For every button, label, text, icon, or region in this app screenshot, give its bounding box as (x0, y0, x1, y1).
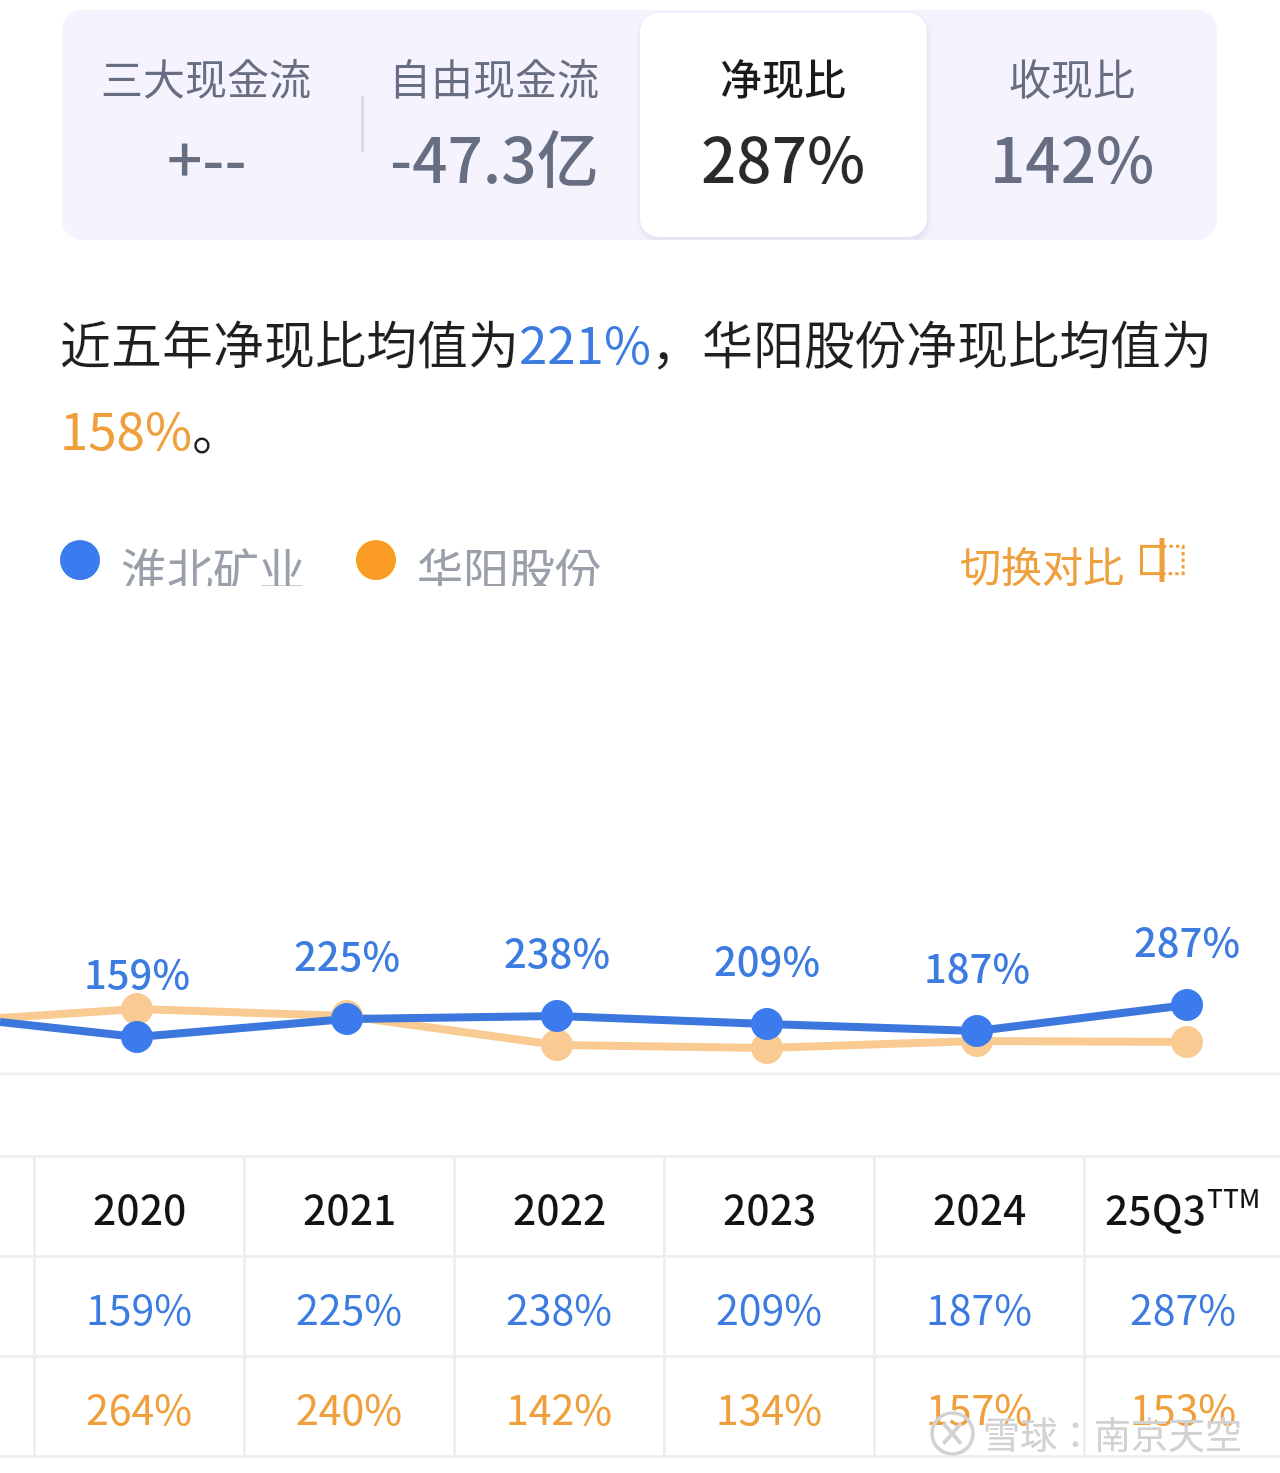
button[interactable]: 净现比 (640, 13, 927, 237)
staticText: 142% (506, 1377, 613, 1436)
staticText: 收现比 (1009, 46, 1136, 107)
staticText: 287% (701, 111, 866, 201)
staticText: 淮北矿业 (121, 534, 305, 586)
staticText: 142% (990, 111, 1155, 201)
staticText: 25Q3 (1105, 1177, 1207, 1236)
staticText: 159% (86, 1277, 193, 1336)
staticText: 切换对比 (960, 534, 1124, 586)
button[interactable]: 自由现金流 (351, 13, 638, 237)
staticText: 225% (296, 1277, 403, 1336)
staticText: 2022 (513, 1177, 607, 1236)
staticText: 157% (926, 1377, 1033, 1436)
staticText: 近五年净现比均值为221%，华阳股份净现比均值为158%。 (60, 305, 1232, 465)
staticText: TTM (1207, 1178, 1261, 1216)
staticText: 238% (506, 1277, 613, 1336)
staticText: 240% (296, 1377, 403, 1436)
staticText: 287% (1130, 1277, 1237, 1336)
staticText: -47.3亿 (390, 111, 599, 201)
staticText: 净现比 (720, 46, 847, 107)
staticText: 287% (1134, 911, 1240, 969)
staticText: 209% (714, 930, 820, 988)
staticText: 153% (1130, 1377, 1237, 1436)
staticText: 187% (926, 1277, 1033, 1336)
staticText: 159% (84, 943, 190, 1001)
staticText: 134% (716, 1377, 823, 1436)
staticText: 264% (86, 1377, 193, 1436)
staticText: 自由现金流 (389, 46, 600, 107)
button[interactable]: 收现比 (929, 13, 1216, 237)
staticText: 2024 (933, 1177, 1027, 1236)
other: 切换对比 (1140, 538, 1184, 582)
staticText: 2020 (93, 1177, 187, 1236)
button[interactable]: 三大现金流 (63, 13, 349, 237)
staticText: 华阳股份 (417, 534, 601, 586)
staticText: 雪球：南京天空 (983, 1406, 1242, 1460)
staticText: 三大现金流 (101, 46, 312, 107)
button[interactable]: 切换对比 (960, 534, 1184, 586)
staticText: +-- (167, 111, 247, 201)
staticText: 238% (504, 922, 610, 980)
staticText: 209% (716, 1277, 823, 1336)
staticText: 225% (294, 925, 400, 983)
staticText: 187% (924, 937, 1030, 995)
staticText: 2021 (303, 1177, 397, 1236)
staticText: 2023 (723, 1177, 817, 1236)
